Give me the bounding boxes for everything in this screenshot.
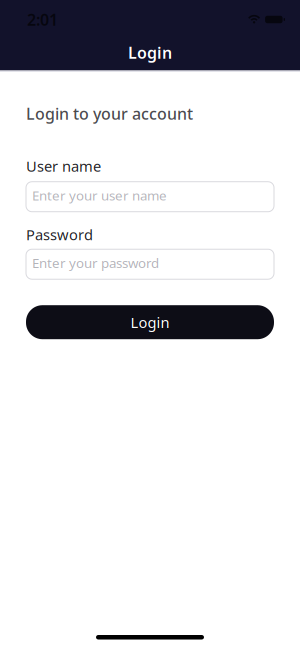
button[interactable]: Enter your user name [26,182,274,212]
staticText: Enter your password [32,254,159,272]
staticText: Login [130,312,169,332]
staticText: Login to your account [26,103,193,124]
staticText: Password [26,225,93,244]
staticText: Enter your user name [32,186,167,204]
staticText: 2:01 [27,9,58,30]
button[interactable]: Login [26,305,274,339]
staticText: User name [26,156,101,176]
button[interactable]: Enter your password [26,249,274,279]
staticText: Login [128,42,172,63]
